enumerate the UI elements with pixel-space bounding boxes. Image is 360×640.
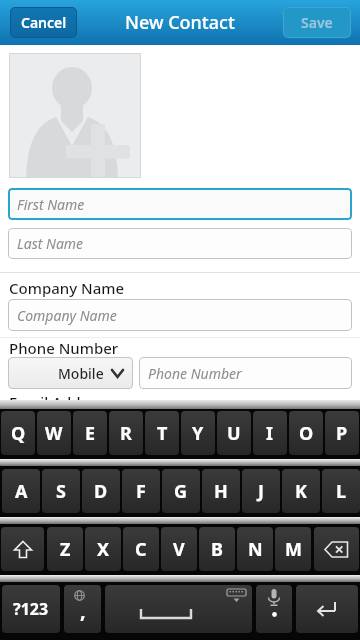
staticText: B	[211, 537, 223, 562]
button[interactable]: G	[162, 469, 200, 513]
staticText: J	[258, 479, 264, 504]
button[interactable]: V	[161, 527, 197, 571]
button[interactable]: W	[37, 411, 71, 455]
staticText: X	[97, 537, 110, 562]
staticText: V	[173, 537, 185, 562]
button[interactable]: E	[73, 411, 107, 455]
staticText: ,	[80, 597, 86, 624]
staticText: First Name	[17, 195, 85, 214]
button[interactable]: O	[289, 411, 323, 455]
staticText: R	[120, 421, 132, 446]
staticText: T	[157, 421, 168, 446]
staticText: S	[56, 479, 66, 504]
staticText: N	[248, 537, 263, 562]
button[interactable]: X	[85, 527, 121, 571]
button[interactable]: ,	[64, 585, 101, 633]
button[interactable]: Mobile	[8, 357, 133, 389]
button[interactable]: First Name	[8, 188, 352, 220]
staticText: Y	[192, 421, 204, 446]
staticText: Company Name	[9, 278, 125, 298]
button[interactable]: J	[242, 469, 280, 513]
button[interactable]	[256, 585, 292, 633]
button[interactable]: ?123	[2, 585, 60, 633]
button[interactable]: Z	[47, 527, 83, 571]
button[interactable]: Y	[181, 411, 215, 455]
staticText: I	[266, 421, 274, 446]
staticText: ?123	[13, 598, 49, 620]
button[interactable]: R	[109, 411, 143, 455]
staticText: F	[136, 479, 146, 504]
staticText: New Contact	[125, 10, 235, 35]
button[interactable]	[314, 527, 359, 571]
button[interactable]: P	[325, 411, 359, 455]
staticText: A	[15, 479, 28, 504]
button[interactable]: Save	[283, 7, 351, 38]
button[interactable]: Phone Number	[139, 357, 352, 389]
staticText: M	[285, 537, 302, 562]
staticText: Q	[11, 421, 26, 446]
button[interactable]: M	[275, 527, 311, 571]
button[interactable]	[1, 527, 44, 571]
staticText: Cancel	[21, 13, 67, 32]
staticText: O	[299, 421, 314, 446]
staticText: C	[135, 537, 147, 562]
button[interactable]: L	[322, 469, 360, 513]
staticText: W	[45, 421, 63, 446]
button[interactable]: C	[123, 527, 159, 571]
button[interactable]: Cancel	[10, 7, 77, 38]
staticText: E	[85, 421, 96, 446]
staticText: Z	[60, 537, 71, 562]
staticText: Mobile	[58, 364, 104, 383]
staticText: Phone Number	[148, 364, 242, 383]
staticText: Email Address	[9, 392, 110, 412]
button[interactable]: K	[282, 469, 320, 513]
staticText: D	[94, 479, 108, 504]
button[interactable]: Q	[1, 411, 35, 455]
button[interactable]: U	[217, 411, 251, 455]
staticText: K	[295, 479, 307, 504]
button[interactable]: Last Name	[8, 228, 352, 259]
button[interactable]: H	[202, 469, 240, 513]
button[interactable]	[105, 585, 252, 633]
button[interactable]: F	[122, 469, 160, 513]
button[interactable]: A	[2, 469, 40, 513]
button[interactable]: S	[42, 469, 80, 513]
button[interactable]: B	[199, 527, 235, 571]
staticText: Company Name	[17, 306, 117, 325]
button[interactable]: I	[253, 411, 287, 455]
staticText: P	[336, 421, 348, 446]
staticText: Phone Number	[9, 338, 119, 358]
button[interactable]: D	[82, 469, 120, 513]
staticText: Save	[301, 13, 333, 32]
staticText: L	[336, 479, 347, 504]
button[interactable]	[296, 585, 358, 633]
staticText: H	[214, 479, 228, 504]
staticText: Last Name	[17, 234, 84, 253]
button[interactable]: N	[237, 527, 273, 571]
button[interactable]	[9, 53, 141, 178]
staticText: U	[227, 421, 241, 446]
staticText: G	[174, 479, 188, 504]
button[interactable]: Company Name	[8, 299, 352, 331]
button[interactable]: T	[145, 411, 179, 455]
